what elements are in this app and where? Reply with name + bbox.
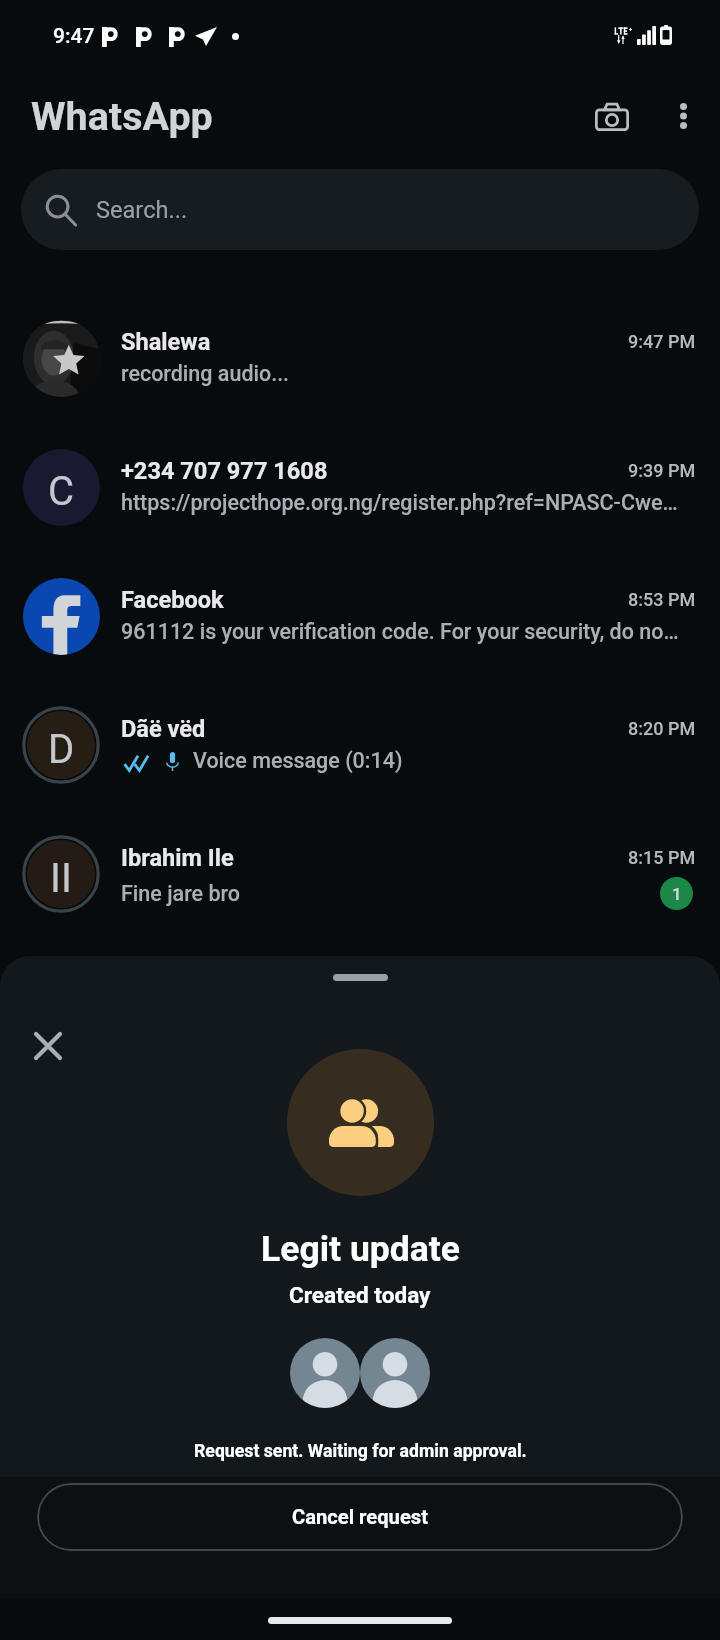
staticText: 9:47 PM [628, 331, 696, 352]
button[interactable]: D [0, 680, 720, 809]
staticText: Fine jare bro [121, 881, 660, 906]
button[interactable]: Facebook [0, 551, 720, 680]
staticText: D [48, 726, 75, 773]
button[interactable]: Shalewa [0, 293, 720, 422]
staticText: C [48, 468, 75, 515]
staticText: II [50, 855, 72, 902]
staticText: Cancel request [292, 1505, 429, 1529]
staticText: 9:47 [53, 24, 95, 49]
button[interactable]: Camera [575, 80, 648, 153]
staticText: WhatsApp [31, 93, 213, 139]
staticText: Legit update [261, 1228, 460, 1270]
staticText: 9:39 PM [628, 460, 696, 481]
staticText: 8:15 PM [628, 847, 696, 868]
button[interactable]: Cancel request [37, 1483, 683, 1551]
staticText: Voice message (0:14) [193, 748, 693, 773]
button[interactable]: II [0, 809, 720, 938]
staticText: Ibrahim Ile [121, 844, 551, 872]
staticText: https://projecthope.org.ng/register.php?… [121, 490, 693, 515]
button[interactable]: Close [19, 1017, 76, 1074]
button[interactable]: Search... [21, 169, 699, 250]
button[interactable]: C [0, 422, 720, 551]
staticText: Facebook [121, 586, 551, 614]
staticText: 8:20 PM [628, 718, 696, 739]
staticText: Shalewa [121, 328, 551, 356]
staticText: recording audio... [121, 361, 693, 386]
staticText: 1 [672, 884, 682, 904]
staticText: Request sent. Waiting for admin approval… [194, 1441, 527, 1462]
staticText: 8:53 PM [628, 589, 696, 610]
button[interactable]: More options [646, 80, 719, 153]
staticText: 961112 is your verification code. For yo… [121, 619, 693, 644]
staticText: Search... [96, 196, 188, 224]
staticText: Created today [289, 1282, 431, 1308]
staticText: +234 707 977 1608 [121, 457, 551, 485]
staticText: Dãë vëd [121, 715, 551, 743]
